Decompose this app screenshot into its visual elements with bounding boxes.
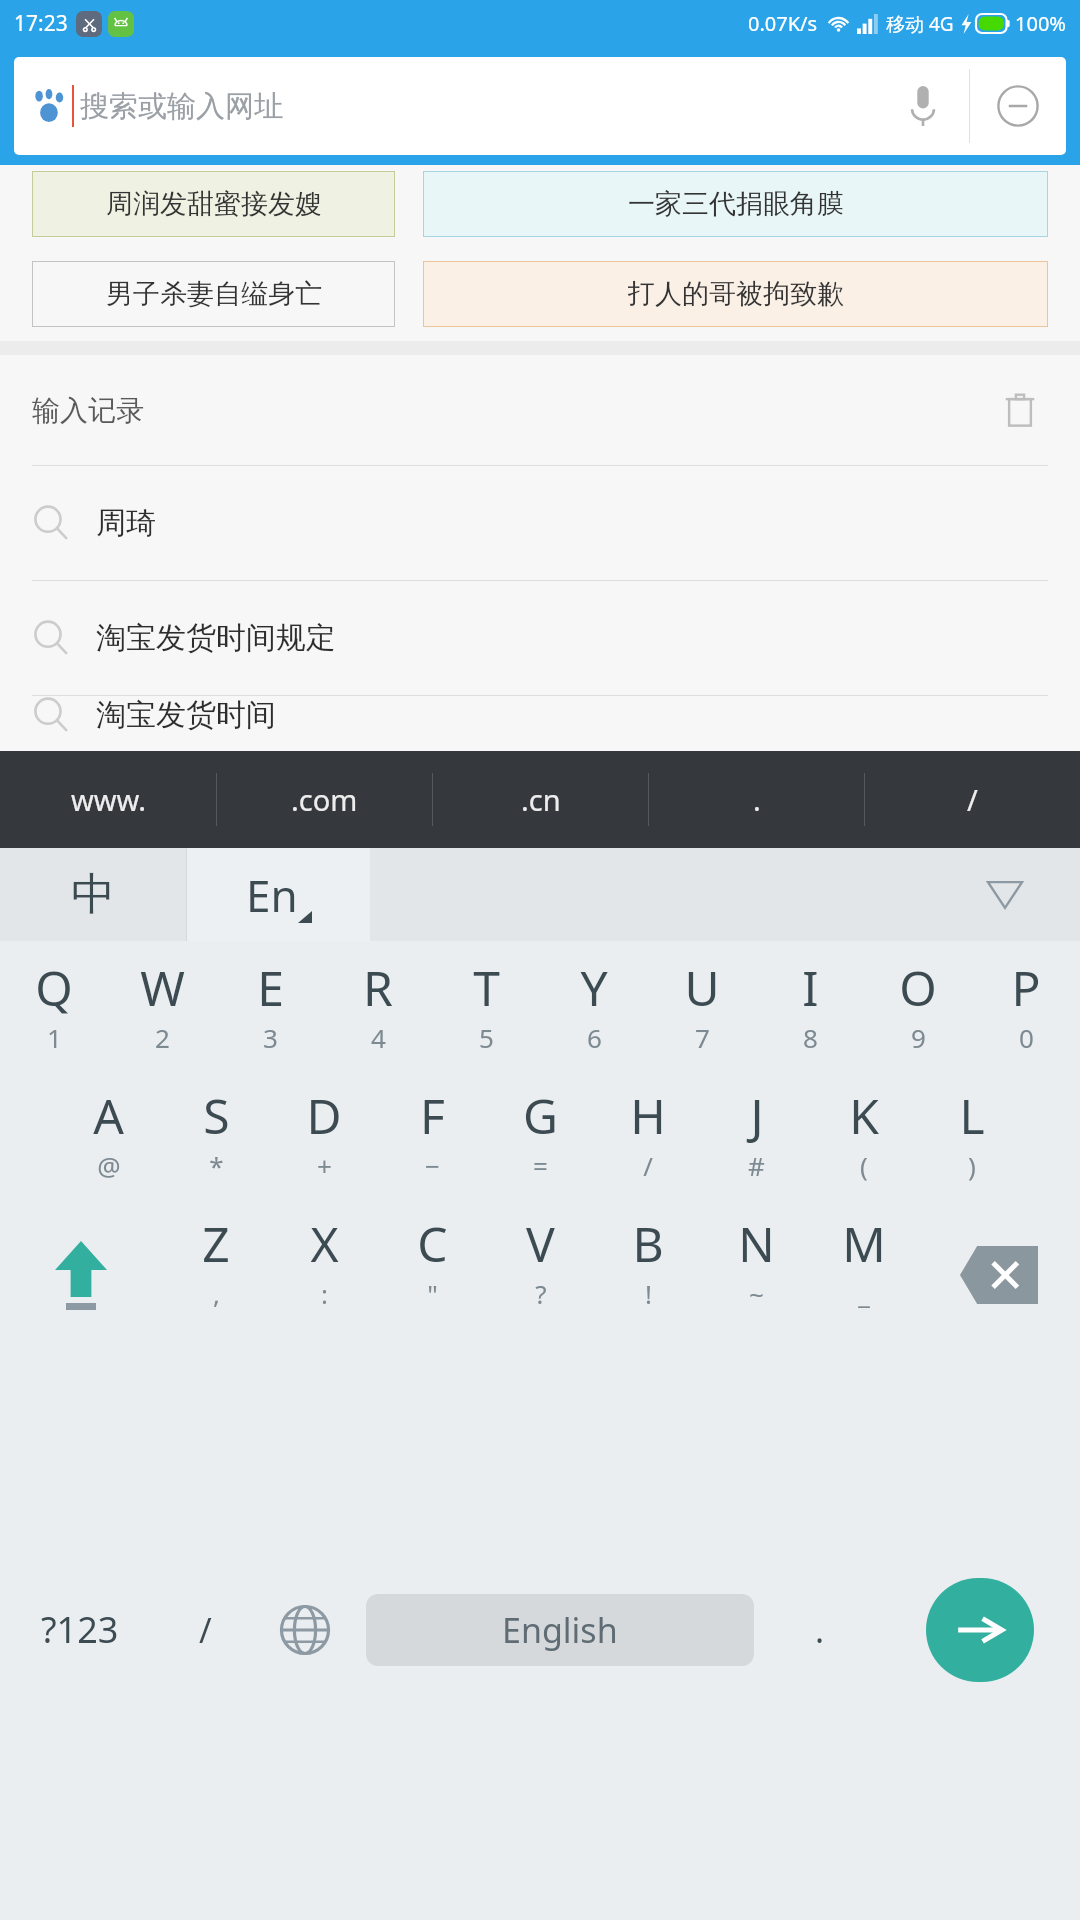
- button[interactable]: 男子杀妻自缢身亡: [32, 261, 395, 327]
- staticText: .cn: [521, 780, 561, 819]
- staticText: U: [684, 955, 720, 1020]
- staticText: 6: [587, 1020, 602, 1055]
- button[interactable]: Z: [162, 1211, 270, 1339]
- button[interactable]: K: [810, 1083, 918, 1211]
- button[interactable]: M: [810, 1211, 918, 1339]
- staticText: 1: [47, 1020, 62, 1055]
- button[interactable]: C: [378, 1211, 486, 1339]
- staticText: En: [246, 865, 298, 925]
- button[interactable]: S: [162, 1083, 270, 1211]
- staticText: T: [473, 955, 500, 1020]
- button[interactable]: /: [160, 1339, 250, 1920]
- button[interactable]: Clear history: [992, 382, 1048, 438]
- staticText: 4: [371, 1020, 386, 1055]
- button[interactable]: 淘宝发货时间: [32, 696, 1048, 751]
- staticText: /: [967, 780, 978, 819]
- button[interactable]: 搜索或输入网址: [14, 57, 877, 155]
- button[interactable]: English input: [187, 848, 370, 941]
- button[interactable]: Close tab: [970, 57, 1066, 155]
- button[interactable]: English: [366, 1594, 754, 1666]
- button[interactable]: Change language: [250, 1339, 360, 1920]
- staticText: 5: [479, 1020, 494, 1055]
- staticText: W: [140, 955, 185, 1020]
- button[interactable]: A: [54, 1083, 162, 1211]
- button[interactable]: R: [324, 955, 432, 1083]
- staticText: *: [209, 1148, 224, 1183]
- staticText: 搜索或输入网址: [80, 88, 283, 125]
- button[interactable]: B: [594, 1211, 702, 1339]
- staticText: !: [645, 1276, 652, 1311]
- button[interactable]: Shift: [0, 1211, 162, 1339]
- staticText: F: [420, 1083, 445, 1148]
- button[interactable]: Voice search: [877, 57, 969, 155]
- button[interactable]: U: [648, 955, 756, 1083]
- staticText: Q: [35, 955, 73, 1020]
- staticText: 周润发甜蜜接发嫂: [106, 187, 322, 221]
- button[interactable]: 周琦: [32, 466, 1048, 580]
- staticText: ?123: [41, 1605, 119, 1654]
- staticText: (: [860, 1148, 868, 1183]
- staticText: @: [97, 1148, 121, 1183]
- button[interactable]: www.: [0, 751, 216, 848]
- button[interactable]: N: [702, 1211, 810, 1339]
- staticText: Z: [202, 1211, 230, 1276]
- staticText: ,: [213, 1276, 220, 1311]
- staticText: R: [363, 955, 393, 1020]
- button[interactable]: .cn: [433, 751, 648, 848]
- button[interactable]: Chinese input: [0, 848, 186, 941]
- button[interactable]: D: [270, 1083, 378, 1211]
- button[interactable]: H: [594, 1083, 702, 1211]
- staticText: 淘宝发货时间规定: [96, 619, 336, 657]
- staticText: 中: [71, 867, 115, 922]
- staticText: #: [748, 1148, 765, 1183]
- button[interactable]: Q: [0, 955, 108, 1083]
- button[interactable]: E: [216, 955, 324, 1083]
- button[interactable]: 周润发甜蜜接发嫂: [32, 171, 395, 237]
- staticText: 9: [911, 1020, 926, 1055]
- button[interactable]: X: [270, 1211, 378, 1339]
- button[interactable]: Backspace: [918, 1211, 1080, 1339]
- button[interactable]: T: [432, 955, 540, 1083]
- staticText: Y: [580, 955, 608, 1020]
- staticText: 男子杀妻自缢身亡: [106, 277, 322, 311]
- staticText: 移动 4G: [886, 11, 954, 37]
- staticText: J: [750, 1083, 764, 1148]
- button[interactable]: .com: [217, 751, 432, 848]
- staticText: C: [417, 1211, 448, 1276]
- staticText: ": [427, 1276, 438, 1311]
- staticText: ?: [535, 1276, 547, 1311]
- staticText: N: [738, 1211, 775, 1276]
- button[interactable]: J: [702, 1083, 810, 1211]
- button[interactable]: Go: [926, 1578, 1034, 1682]
- staticText: 3: [263, 1020, 278, 1055]
- button[interactable]: 一家三代捐眼角膜: [423, 171, 1048, 237]
- staticText: .: [753, 780, 761, 819]
- staticText: /: [199, 1607, 212, 1653]
- button[interactable]: Y: [540, 955, 648, 1083]
- button[interactable]: O: [864, 955, 972, 1083]
- button[interactable]: L: [918, 1083, 1026, 1211]
- button[interactable]: ?123: [0, 1339, 160, 1920]
- staticText: X: [310, 1211, 339, 1276]
- button[interactable]: W: [108, 955, 216, 1083]
- button[interactable]: P: [972, 955, 1080, 1083]
- button[interactable]: I: [756, 955, 864, 1083]
- staticText: .com: [291, 780, 358, 819]
- staticText: 一家三代捐眼角膜: [628, 187, 844, 221]
- staticText: M: [842, 1211, 886, 1276]
- staticText: P: [1011, 955, 1041, 1020]
- button[interactable]: /: [865, 751, 1080, 848]
- button[interactable]: 打人的哥被拘致歉: [423, 261, 1048, 327]
- staticText: +: [317, 1148, 332, 1183]
- staticText: ): [968, 1148, 976, 1183]
- button[interactable]: F: [378, 1083, 486, 1211]
- button[interactable]: G: [486, 1083, 594, 1211]
- staticText: ~: [749, 1276, 764, 1311]
- button[interactable]: Hide keyboard: [980, 870, 1030, 920]
- staticText: 周琦: [96, 504, 156, 542]
- button[interactable]: 淘宝发货时间规定: [32, 581, 1048, 695]
- button[interactable]: V: [486, 1211, 594, 1339]
- staticText: 100%: [1015, 10, 1066, 37]
- button[interactable]: .: [649, 751, 864, 848]
